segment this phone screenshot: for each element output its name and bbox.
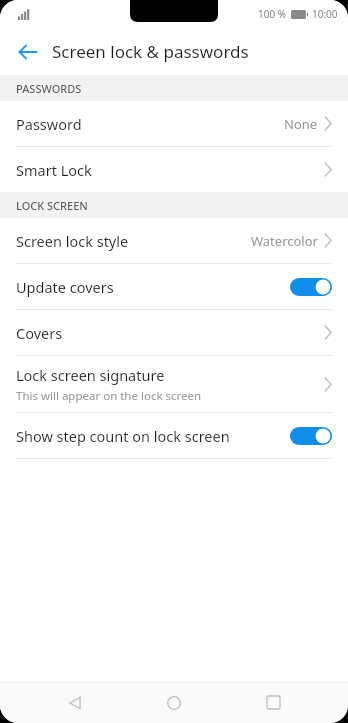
button[interactable]: Back	[10, 34, 46, 70]
staticText: Watercolor	[251, 232, 318, 250]
button[interactable]: Covers	[0, 310, 348, 355]
button[interactable]: Lock screen signature	[0, 356, 348, 412]
staticText: PASSWORDS	[16, 81, 82, 96]
button[interactable]: Update covers	[0, 264, 348, 309]
staticText: Screen lock & passwords	[52, 40, 249, 63]
staticText: Lock screen signature	[16, 365, 165, 385]
button[interactable]: Recents	[249, 682, 297, 723]
staticText: Show step count on lock screen	[16, 426, 230, 446]
staticText: This will appear on the lock screen	[16, 388, 202, 404]
button[interactable]: Toggle	[290, 278, 332, 296]
staticText: 100 %	[258, 7, 287, 21]
staticText: LOCK SCREEN	[16, 198, 88, 213]
staticText: Password	[16, 114, 82, 134]
staticText: Covers	[16, 323, 63, 343]
button[interactable]: Smart Lock	[0, 147, 348, 192]
staticText: 10:00	[312, 7, 338, 21]
button[interactable]: Toggle	[290, 427, 332, 445]
staticText: None	[284, 115, 318, 133]
button[interactable]: Back	[51, 682, 99, 723]
staticText: Update covers	[16, 277, 114, 297]
button[interactable]: Show step count on lock screen	[0, 413, 348, 458]
staticText: Screen lock style	[16, 231, 129, 251]
button[interactable]: Home	[150, 682, 198, 723]
staticText: Smart Lock	[16, 160, 92, 180]
button[interactable]: Password	[0, 101, 348, 146]
button[interactable]: Screen lock style	[0, 218, 348, 263]
